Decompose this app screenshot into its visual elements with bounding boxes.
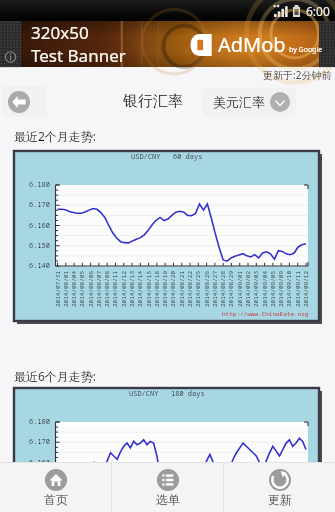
staticText: 选单 <box>156 492 180 507</box>
button[interactable]: 更新 <box>224 463 335 512</box>
button[interactable]: 美元汇率 <box>203 88 296 116</box>
staticText: 银行汇率 <box>123 92 183 111</box>
staticText: 6:00 <box>306 3 330 19</box>
staticText: 更新 <box>268 492 292 507</box>
staticText: AdMob <box>218 31 286 58</box>
button[interactable]: 首页 <box>0 463 111 512</box>
button[interactable]: Back <box>2 86 47 117</box>
button[interactable]: 选单 <box>112 463 223 512</box>
staticText: 320x50 <box>31 21 89 44</box>
staticText: 更新于:2分钟前 <box>263 68 332 82</box>
staticText: by Google <box>289 45 323 55</box>
staticText: 美元汇率 <box>213 94 265 110</box>
staticText: 最近6个月走势: <box>14 368 97 384</box>
staticText: Test Banner <box>31 44 126 67</box>
staticText: http://www.ChinaRate.org <box>222 310 309 318</box>
staticText: 最近2个月走势: <box>14 128 97 144</box>
staticText: 首页 <box>44 492 68 507</box>
staticText: http://www.ChinaRate.org <box>222 501 309 509</box>
staticText: USD/CNY 180 days <box>129 389 205 399</box>
staticText: USD/CNY 60 days <box>131 152 203 162</box>
button[interactable]: 320x50 <box>0 21 335 67</box>
